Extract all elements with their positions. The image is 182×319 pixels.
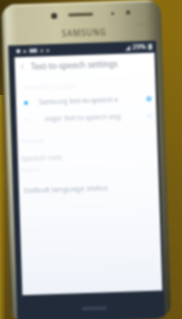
staticText: Text-to-speech settings [31, 58, 118, 72]
staticText: Samsung text-to-speech e [39, 95, 119, 106]
staticText: Speech rate [21, 152, 63, 163]
staticText: Default language status [24, 182, 109, 195]
button[interactable]: Engine settings [143, 110, 155, 121]
staticText: 29% [132, 42, 146, 52]
button[interactable]: Navigate up [14, 58, 29, 74]
staticText: oogle Text to speech eng [44, 112, 121, 123]
button[interactable]: oogle Text to speech eng [16, 107, 157, 128]
button[interactable]: Navigate up [14, 54, 155, 74]
button[interactable]: Samsung text-to-speech e [16, 90, 156, 111]
staticText: General [21, 136, 44, 145]
staticText: SAMSUNG [62, 26, 107, 39]
button[interactable]: Engine settings [143, 93, 154, 104]
staticText: DUOS [137, 21, 154, 28]
